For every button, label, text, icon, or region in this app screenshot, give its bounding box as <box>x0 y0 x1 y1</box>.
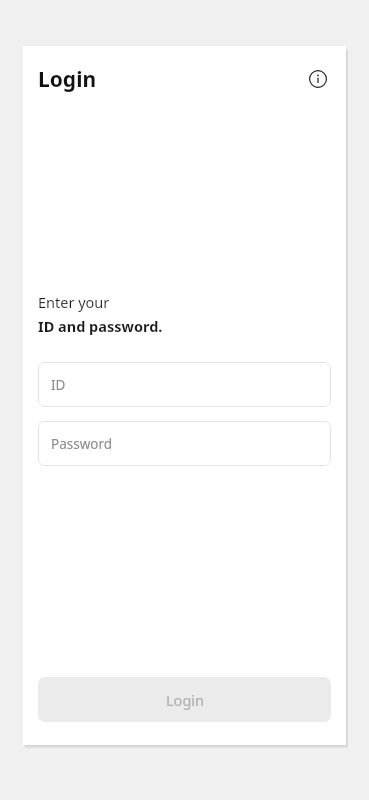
staticText: Login <box>38 65 97 94</box>
staticText: Login <box>166 690 204 710</box>
staticText: Enter your <box>38 292 110 312</box>
button[interactable]: ID <box>38 362 331 407</box>
button[interactable]: Password <box>38 421 331 466</box>
staticText: ID and password. <box>38 316 163 336</box>
button[interactable]: Information <box>303 64 333 94</box>
staticText: Password <box>51 435 113 453</box>
button[interactable]: Login <box>38 677 331 722</box>
staticText: ID <box>51 376 66 394</box>
